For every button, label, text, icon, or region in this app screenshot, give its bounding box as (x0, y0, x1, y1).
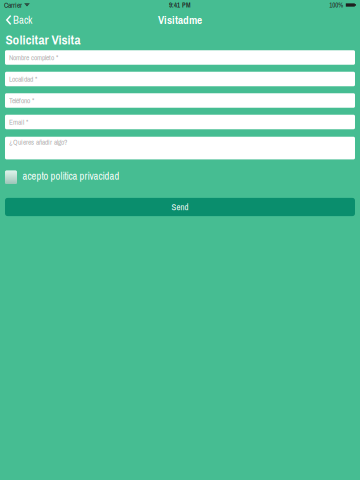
button[interactable]: Localidad * (5, 72, 355, 86)
staticText: Email * (9, 117, 28, 127)
staticText: Visitadme (158, 12, 202, 28)
staticText: Teléfono * (9, 96, 34, 105)
button[interactable]: Send (5, 198, 355, 216)
button[interactable]: acepto politica privacidad (5, 169, 355, 185)
staticText: acepto politica privacidad (22, 169, 119, 183)
button[interactable]: Email * (5, 115, 355, 129)
button[interactable]: Teléfono * (5, 93, 355, 108)
staticText: Send (171, 201, 188, 213)
staticText: ¿Quieres añadir algo? (9, 137, 67, 147)
staticText: Solicitar Visita (5, 31, 80, 49)
staticText: 9:41 PM (169, 0, 191, 9)
button[interactable]: ¿Quieres añadir algo? (5, 137, 355, 159)
staticText: Back (13, 13, 32, 27)
staticText: Nombre completo * (9, 53, 58, 62)
button[interactable]: Back (0, 10, 40, 30)
staticText: Carrier (4, 0, 22, 10)
staticText: Localidad * (9, 74, 37, 84)
button[interactable]: Nombre completo * (5, 50, 355, 65)
staticText: 100% (329, 0, 343, 9)
